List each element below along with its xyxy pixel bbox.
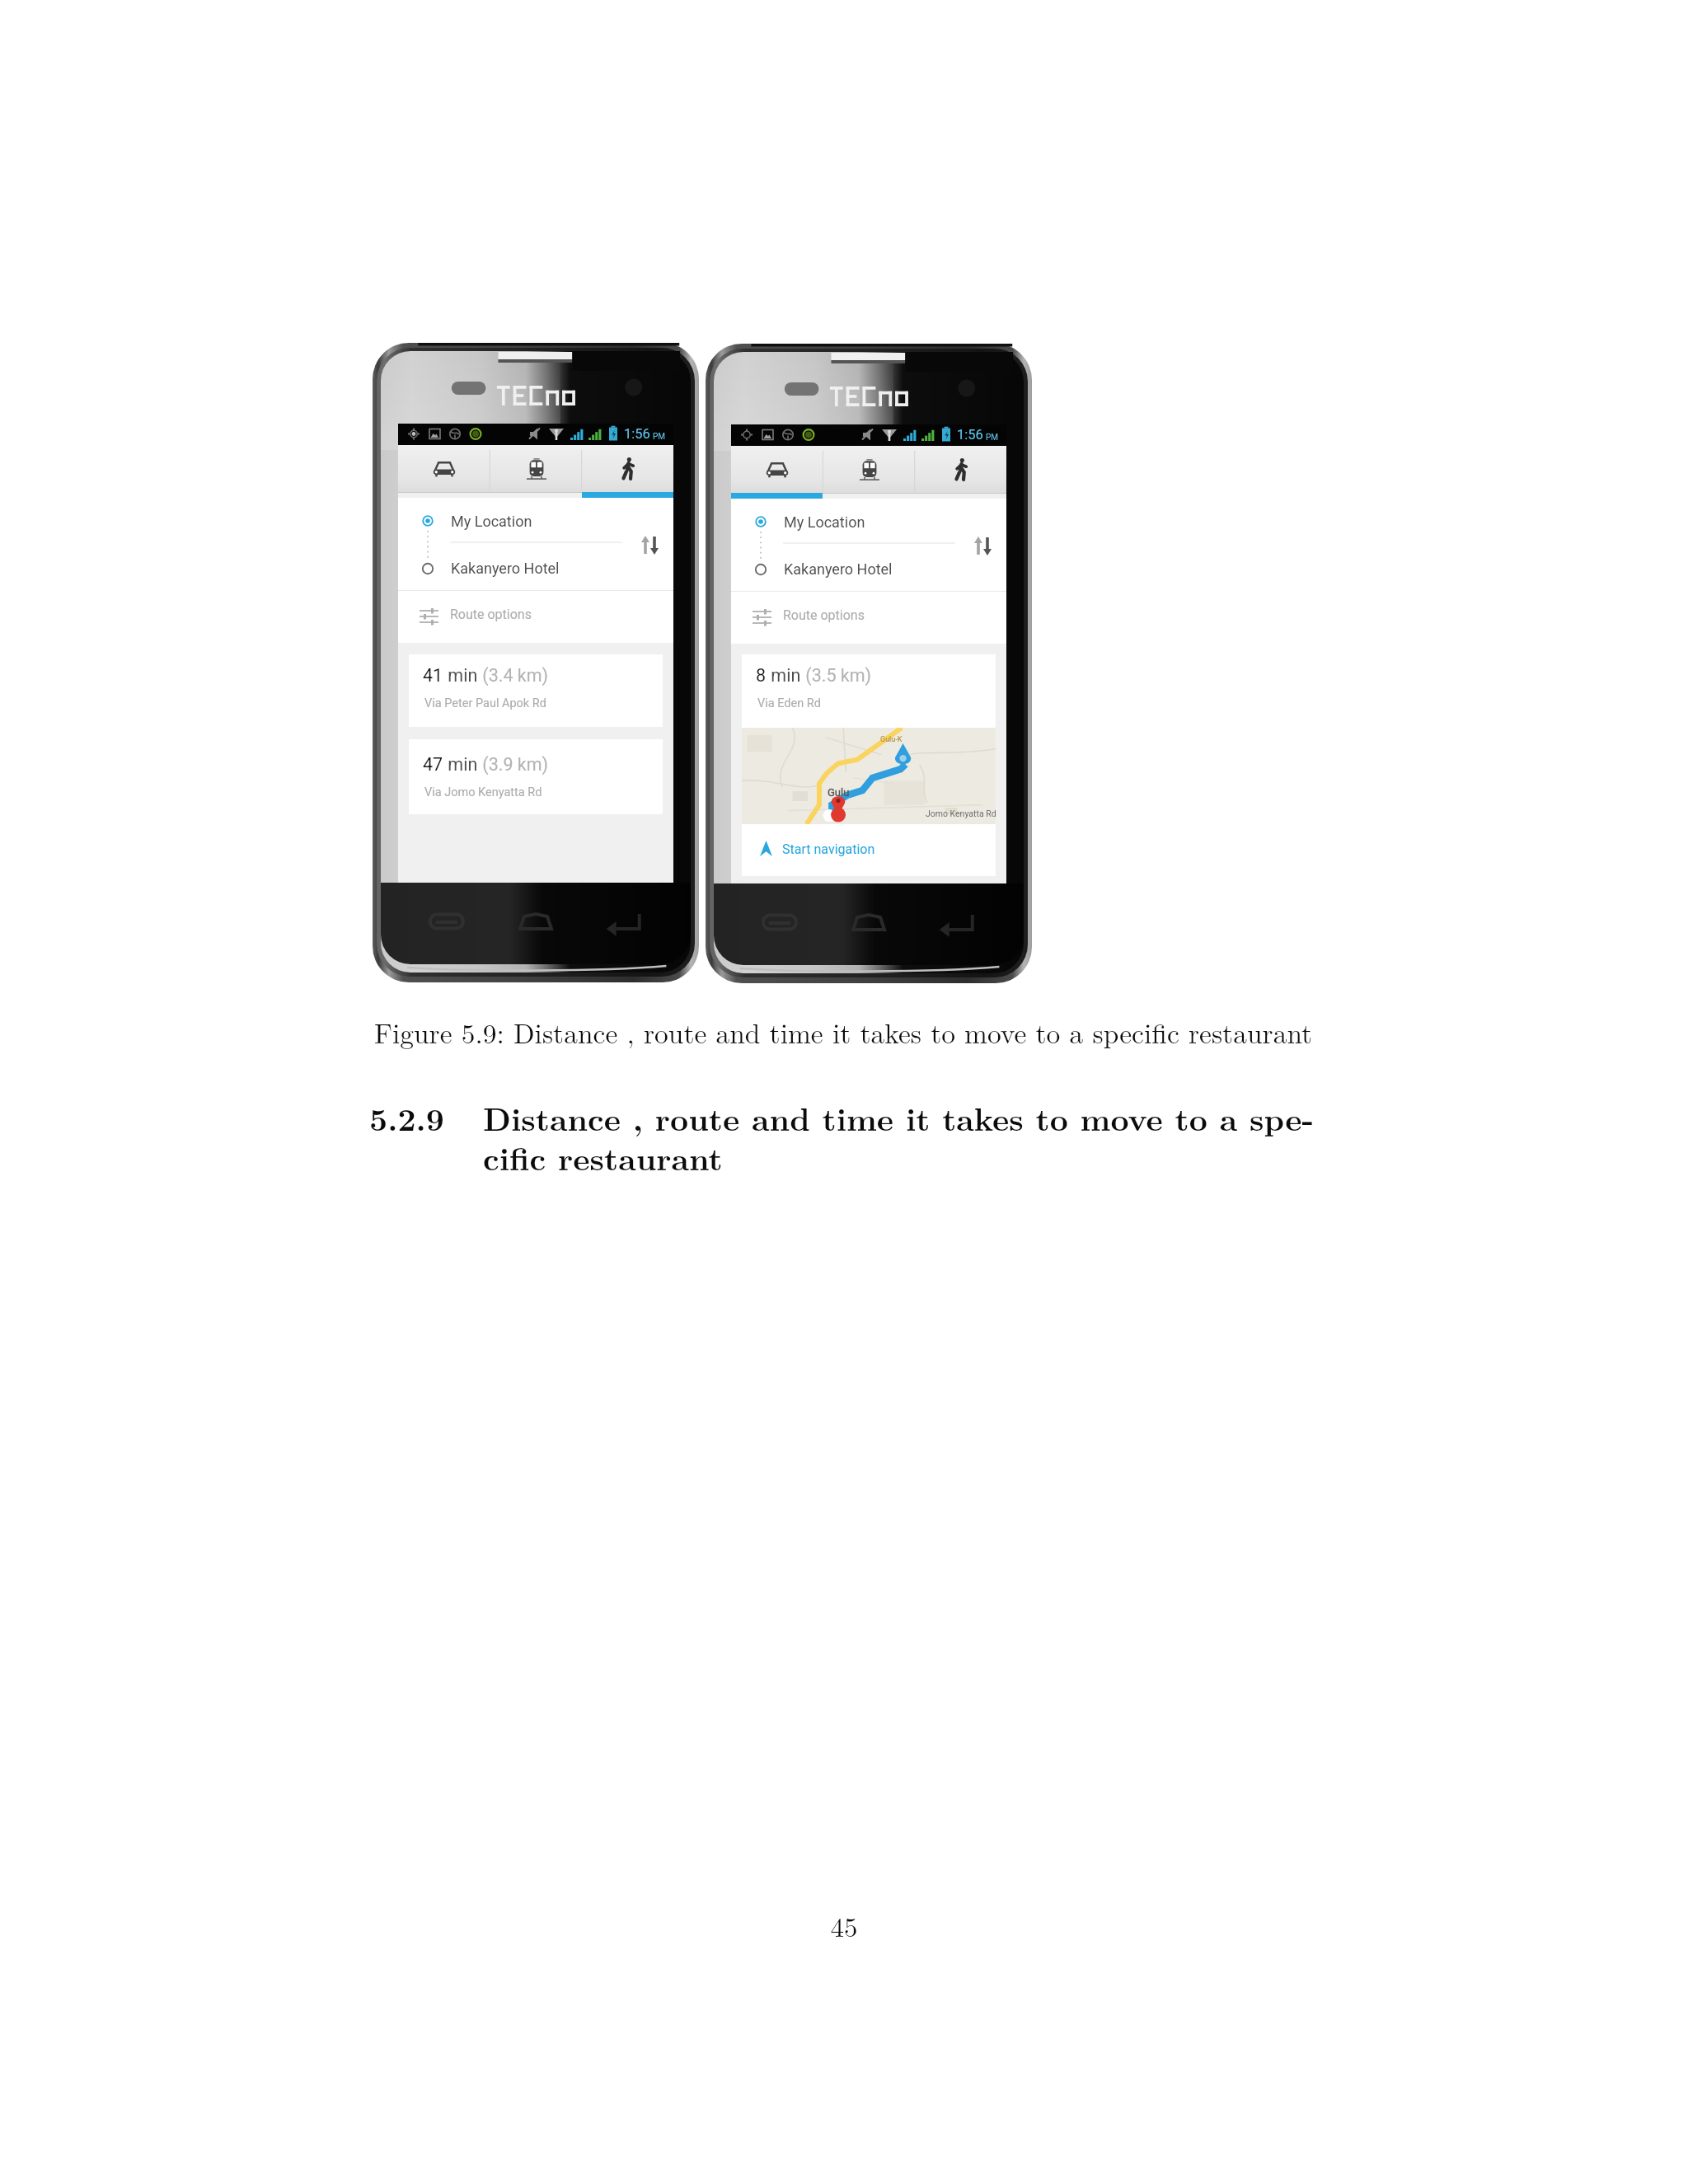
button[interactable]: Driving [731, 446, 823, 493]
button[interactable]: Transit [490, 445, 582, 492]
staticText: Gulu-K [880, 735, 903, 744]
staticText: Via Peter Paul Apok Rd [424, 696, 546, 710]
button[interactable]: Swap start and destination [634, 527, 672, 565]
button[interactable]: Start navigation [742, 824, 996, 876]
staticText: My Location [784, 513, 865, 531]
staticText: min [767, 665, 801, 686]
staticText: 1:56 [624, 426, 650, 442]
staticText: Figure 5.9: Distance , route and time it… [374, 1012, 1313, 1051]
staticText: min [443, 665, 478, 686]
staticText: 5.2.9 [369, 1094, 444, 1140]
staticText: Route options [450, 607, 532, 622]
staticText: 45 [0, 1906, 1688, 1945]
staticText: 47 [423, 754, 443, 775]
staticText: min [443, 754, 478, 775]
staticText: Distance , route and time it takes to mo… [483, 1094, 1332, 1179]
staticText: My Location [451, 513, 532, 530]
staticText: PM [653, 432, 666, 442]
button[interactable]: Route options [398, 591, 673, 643]
staticText: (3.9 km) [478, 754, 549, 775]
button[interactable]: 47 [409, 739, 663, 814]
button[interactable]: Route options [731, 592, 1006, 644]
button[interactable]: 41 [409, 654, 663, 727]
button[interactable]: Walking [915, 446, 1006, 493]
button[interactable]: My Location [731, 499, 1006, 545]
button[interactable]: Swap start and destination [967, 528, 1005, 566]
staticText: 1:56 [957, 427, 983, 443]
button[interactable]: Walking [582, 445, 673, 492]
staticText: 41 [423, 665, 443, 686]
staticText: PM [986, 433, 999, 443]
button[interactable]: Driving [398, 445, 490, 492]
button[interactable]: 8 [742, 654, 996, 728]
button[interactable]: Kakanyero Hotel [731, 545, 1006, 591]
button[interactable]: Kakanyero Hotel [398, 544, 673, 590]
staticText: Gulu [828, 786, 850, 799]
staticText: Route options [783, 607, 865, 623]
button[interactable]: My Location [398, 498, 673, 544]
staticText: Via Eden Rd [757, 696, 821, 710]
staticText: (3.4 km) [478, 665, 549, 686]
staticText: Jomo Kenyatta Rd [926, 808, 996, 818]
staticText: (3.5 km) [801, 665, 872, 686]
staticText: 8 [756, 665, 767, 686]
button[interactable]: Transit [823, 446, 915, 493]
staticText: Start navigation [782, 841, 875, 857]
staticText: Via Jomo Kenyatta Rd [424, 785, 542, 799]
staticText: Kakanyero Hotel [451, 560, 560, 577]
staticText: Kakanyero Hotel [784, 560, 893, 578]
